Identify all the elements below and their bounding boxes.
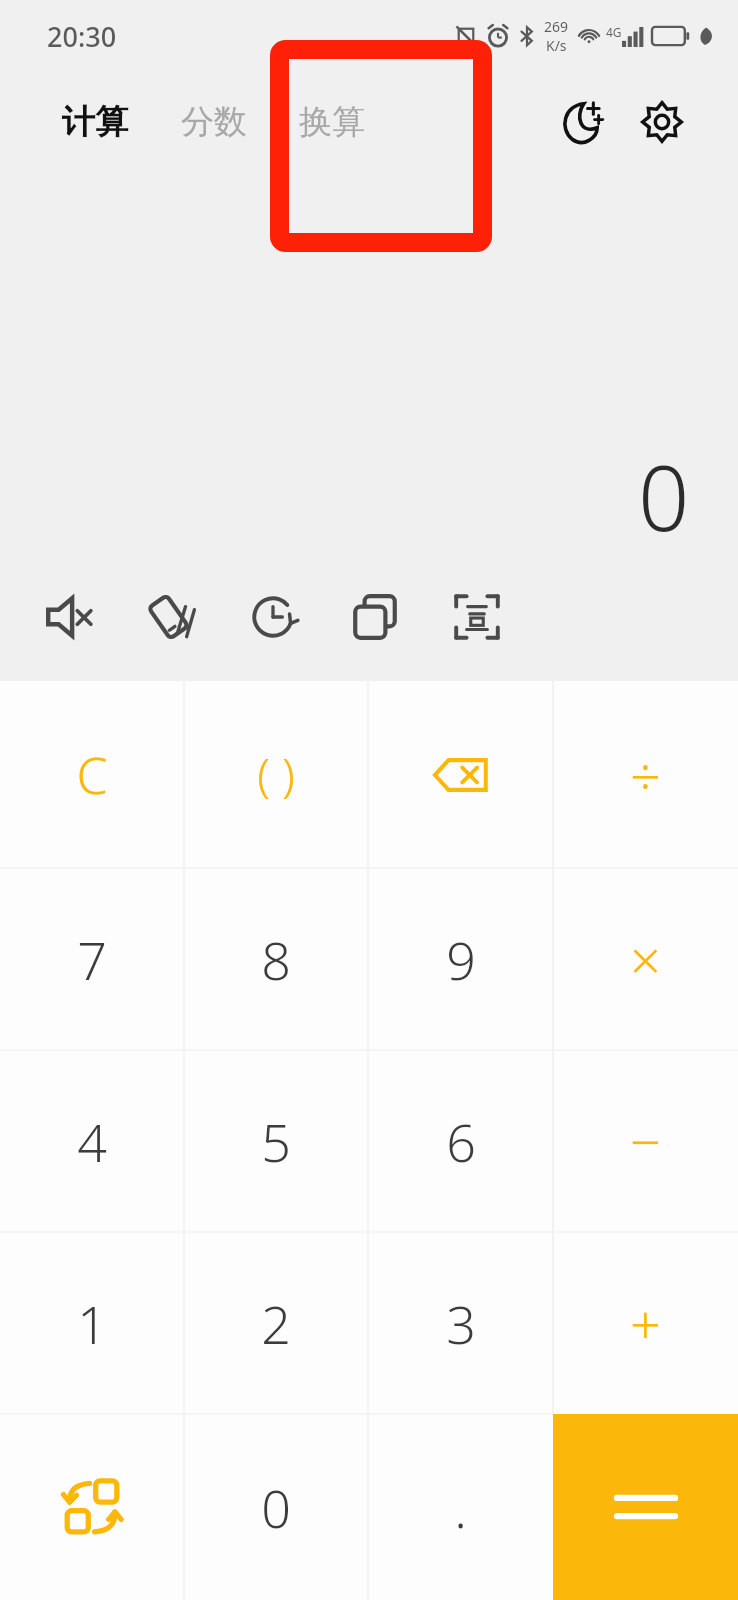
staticText: +: [630, 1286, 661, 1360]
button[interactable]: Copy: [324, 571, 426, 663]
staticText: K/s: [546, 36, 567, 55]
button[interactable]: 分数: [181, 87, 247, 157]
button[interactable]: 7: [0, 868, 184, 1050]
staticText: 6: [446, 1106, 476, 1177]
staticText: ÷: [630, 738, 661, 812]
button[interactable]: Swap: [0, 1414, 184, 1600]
button[interactable]: 换算: [299, 87, 365, 157]
staticText: ×: [630, 922, 661, 996]
button[interactable]: +: [553, 1232, 738, 1414]
button[interactable]: 计算: [62, 87, 128, 157]
staticText: ( ): [257, 743, 295, 806]
staticText: 7: [77, 924, 107, 995]
button[interactable]: −: [553, 1050, 738, 1232]
button[interactable]: Chinese numerals: [426, 571, 528, 663]
button[interactable]: 5: [184, 1050, 368, 1232]
button[interactable]: Settings: [626, 86, 698, 158]
staticText: 0: [261, 1472, 291, 1543]
staticText: 269: [544, 17, 569, 36]
button[interactable]: Equals: [553, 1414, 738, 1600]
button[interactable]: 3: [368, 1232, 553, 1414]
staticText: 0: [638, 435, 690, 558]
button[interactable]: ×: [553, 868, 738, 1050]
button[interactable]: 4: [0, 1050, 184, 1232]
staticText: 计算: [62, 101, 128, 143]
staticText: 20:30: [47, 18, 117, 55]
button[interactable]: C: [0, 681, 184, 868]
staticText: 换算: [299, 101, 365, 143]
staticText: 4: [77, 1106, 107, 1177]
button[interactable]: ÷: [553, 681, 738, 868]
staticText: 4G: [606, 24, 622, 40]
staticText: 2: [261, 1288, 291, 1359]
button[interactable]: .: [368, 1414, 553, 1600]
button[interactable]: Backspace: [368, 681, 553, 868]
staticText: .: [454, 1472, 467, 1543]
button[interactable]: Vibration: [120, 571, 222, 663]
button[interactable]: 6: [368, 1050, 553, 1232]
button[interactable]: ( ): [184, 681, 368, 868]
button[interactable]: Mute: [18, 571, 120, 663]
staticText: 1: [77, 1288, 107, 1359]
button[interactable]: 0: [184, 1414, 368, 1600]
button[interactable]: Dark mode: [542, 86, 614, 158]
button[interactable]: 1: [0, 1232, 184, 1414]
staticText: 5: [261, 1106, 291, 1177]
staticText: 9: [446, 924, 476, 995]
button[interactable]: History: [222, 571, 324, 663]
button[interactable]: 9: [368, 868, 553, 1050]
staticText: 8: [261, 924, 291, 995]
staticText: 分数: [181, 101, 247, 143]
staticText: −: [630, 1104, 661, 1178]
button[interactable]: 2: [184, 1232, 368, 1414]
staticText: C: [76, 741, 108, 809]
button[interactable]: 8: [184, 868, 368, 1050]
staticText: 3: [446, 1288, 476, 1359]
